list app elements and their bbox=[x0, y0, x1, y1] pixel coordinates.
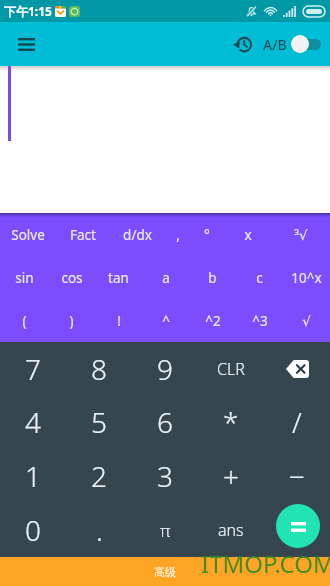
staticText: π bbox=[160, 519, 171, 542]
button[interactable]: ^3 bbox=[236, 299, 283, 342]
button[interactable]: Toggle A/B bbox=[291, 34, 321, 54]
staticText: ( bbox=[22, 312, 27, 330]
button[interactable]: d/dx bbox=[110, 213, 165, 256]
button[interactable]: 2 bbox=[66, 449, 132, 503]
staticText: √ bbox=[302, 313, 311, 329]
button[interactable]: . bbox=[66, 503, 132, 557]
staticText: 10^x bbox=[291, 269, 322, 287]
button[interactable]: x bbox=[223, 213, 272, 256]
staticText: Fact bbox=[70, 226, 96, 244]
staticText: b bbox=[208, 269, 217, 287]
staticText: 8 bbox=[91, 350, 107, 388]
staticText: a bbox=[162, 269, 170, 287]
button[interactable]: 10^x bbox=[283, 256, 330, 299]
button[interactable]: ³√ bbox=[272, 213, 330, 256]
staticText: c bbox=[256, 269, 263, 287]
staticText: 下午1:15 bbox=[4, 3, 52, 19]
staticText: 2 bbox=[91, 457, 107, 495]
button[interactable]: / bbox=[264, 395, 330, 449]
staticText: d/dx bbox=[123, 226, 152, 244]
button[interactable]: ^ bbox=[142, 299, 189, 342]
staticText: 4 bbox=[25, 403, 41, 441]
button[interactable]: 9 bbox=[132, 342, 198, 395]
staticText: A/B bbox=[263, 35, 287, 54]
button[interactable]: 8 bbox=[66, 342, 132, 395]
staticText: ^2 bbox=[205, 312, 221, 330]
staticText: cos bbox=[61, 269, 83, 287]
button[interactable]: ! bbox=[95, 299, 142, 342]
button[interactable]: ) bbox=[48, 299, 95, 342]
button[interactable]: ° bbox=[190, 213, 223, 256]
staticText: Solve bbox=[11, 226, 45, 244]
button[interactable]: Equals bbox=[276, 504, 320, 548]
staticText: 9 bbox=[157, 350, 173, 388]
staticText: ! bbox=[117, 312, 121, 330]
button[interactable]: b bbox=[189, 256, 236, 299]
button[interactable]: , bbox=[165, 213, 190, 256]
button[interactable]: ^2 bbox=[189, 299, 236, 342]
button[interactable]: 0 bbox=[0, 503, 66, 557]
button[interactable]: ans bbox=[198, 503, 264, 557]
button[interactable]: 4 bbox=[0, 395, 66, 449]
staticText: ans bbox=[218, 519, 244, 541]
button[interactable]: √ bbox=[283, 299, 330, 342]
staticText: 3 bbox=[157, 457, 173, 495]
button[interactable]: 5 bbox=[66, 395, 132, 449]
staticText: . bbox=[96, 511, 103, 549]
button[interactable]: c bbox=[236, 256, 283, 299]
button[interactable]: 6 bbox=[132, 395, 198, 449]
staticText: / bbox=[292, 403, 302, 441]
staticText: * bbox=[223, 403, 239, 441]
staticText: , bbox=[176, 226, 180, 244]
button[interactable]: π bbox=[132, 503, 198, 557]
staticText: − bbox=[289, 457, 305, 495]
staticText: sin bbox=[15, 269, 34, 287]
staticText: ^3 bbox=[252, 312, 268, 330]
staticText: 1 bbox=[25, 457, 41, 495]
button[interactable]: 7 bbox=[0, 342, 66, 395]
staticText: CLR bbox=[217, 358, 245, 380]
staticText: tan bbox=[108, 269, 129, 287]
staticText: x bbox=[244, 226, 252, 244]
staticText: 7 bbox=[25, 350, 41, 388]
staticText: + bbox=[223, 457, 239, 495]
button[interactable]: 1 bbox=[0, 449, 66, 503]
button[interactable]: * bbox=[198, 395, 264, 449]
button[interactable]: Fact bbox=[56, 213, 110, 256]
staticText: ³√ bbox=[294, 226, 308, 244]
button[interactable] bbox=[264, 342, 330, 395]
button[interactable]: tan bbox=[95, 256, 142, 299]
button[interactable]: ( bbox=[0, 299, 48, 342]
staticText: 5 bbox=[91, 403, 107, 441]
button[interactable]: a bbox=[142, 256, 189, 299]
button[interactable] bbox=[264, 503, 330, 557]
staticText: 6 bbox=[157, 403, 173, 441]
button[interactable]: 3 bbox=[132, 449, 198, 503]
button[interactable]: 高级 bbox=[154, 565, 176, 579]
staticText: ITMOP.COM bbox=[201, 547, 330, 580]
button[interactable]: CLR bbox=[198, 342, 264, 395]
button[interactable]: Solve bbox=[0, 213, 56, 256]
staticText: ° bbox=[204, 226, 210, 244]
button[interactable]: History bbox=[231, 32, 255, 56]
button[interactable]: cos bbox=[48, 256, 95, 299]
button[interactable]: Menu bbox=[8, 26, 44, 62]
staticText: 0 bbox=[25, 511, 41, 549]
button[interactable]: − bbox=[264, 449, 330, 503]
button[interactable]: sin bbox=[0, 256, 48, 299]
staticText: ) bbox=[69, 312, 74, 330]
button[interactable]: + bbox=[198, 449, 264, 503]
staticText: ^ bbox=[162, 312, 170, 330]
